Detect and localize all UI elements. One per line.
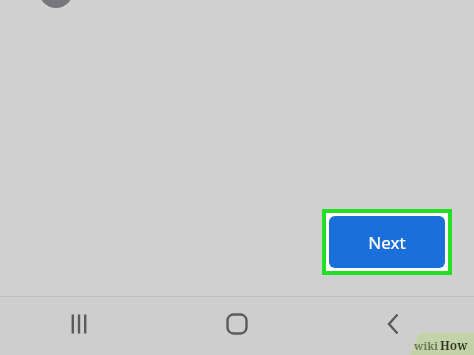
staticText: wiki <box>414 338 439 353</box>
button[interactable]: Home <box>158 295 316 353</box>
staticText: Next <box>368 231 406 254</box>
button[interactable]: Next <box>329 216 445 268</box>
staticText: How <box>440 337 468 353</box>
button[interactable]: Back <box>316 295 474 353</box>
button[interactable]: Recent apps <box>0 295 158 353</box>
